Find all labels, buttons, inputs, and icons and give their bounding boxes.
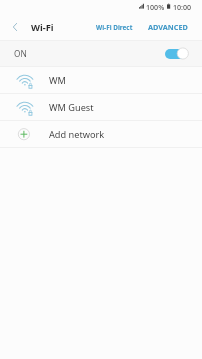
staticText: WM Guest <box>49 101 94 114</box>
button[interactable]: Wi-Fi Direct <box>91 14 138 40</box>
button[interactable]: ADVANCED <box>143 14 193 40</box>
staticText: 100% <box>146 2 165 12</box>
staticText: ADVANCED <box>148 22 188 32</box>
button[interactable]: ON <box>0 41 202 66</box>
staticText: Wi-Fi Direct <box>96 23 133 32</box>
button[interactable]: WM Guest <box>0 94 202 120</box>
staticText: WM <box>49 74 66 87</box>
staticText: 10:00 <box>173 2 192 12</box>
staticText: Add network <box>49 128 105 141</box>
staticText: Wi-Fi <box>31 21 54 34</box>
button[interactable]: Navigate up <box>0 14 31 40</box>
staticText: ON <box>14 48 27 59</box>
button[interactable]: WM <box>0 67 202 93</box>
button[interactable]: Add network <box>0 121 202 147</box>
button[interactable]: Wi-Fi on/off <box>165 47 189 60</box>
